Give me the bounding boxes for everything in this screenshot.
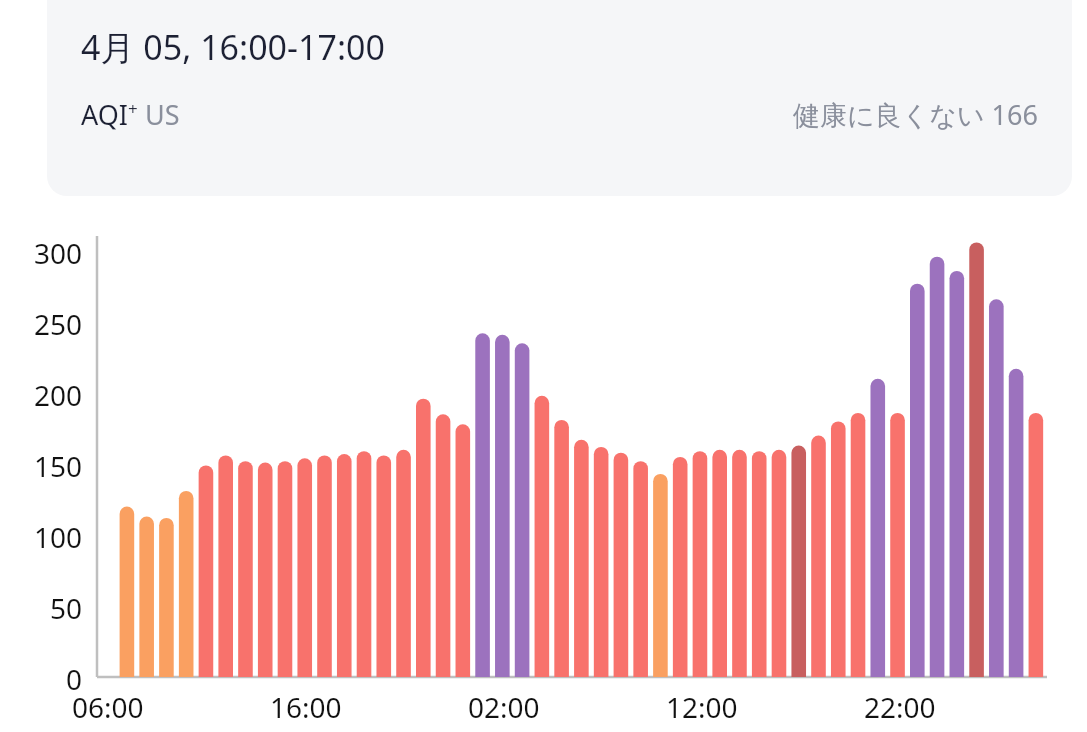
staticText: 300 bbox=[34, 234, 83, 272]
staticText: 250 bbox=[34, 305, 83, 343]
staticText: 02:00 bbox=[468, 688, 540, 726]
staticText: 16:00 bbox=[270, 688, 342, 726]
staticText: 100 bbox=[34, 518, 83, 556]
staticText: AQI bbox=[81, 96, 128, 133]
staticText: US bbox=[138, 96, 180, 133]
staticText: 0 bbox=[66, 660, 83, 698]
staticText: 50 bbox=[50, 589, 83, 627]
staticText: + bbox=[128, 97, 138, 120]
staticText: 22:00 bbox=[864, 688, 936, 726]
button[interactable]: 4月 05, 16:00-17:00 bbox=[47, 0, 1072, 196]
staticText: 4月 05, 16:00-17:00 bbox=[81, 24, 385, 70]
staticText: 06:00 bbox=[72, 688, 144, 726]
staticText: 150 bbox=[34, 447, 83, 485]
staticText: 200 bbox=[34, 376, 83, 414]
staticText: 健康に良くない 166 bbox=[793, 96, 1038, 133]
staticText: 12:00 bbox=[666, 688, 738, 726]
